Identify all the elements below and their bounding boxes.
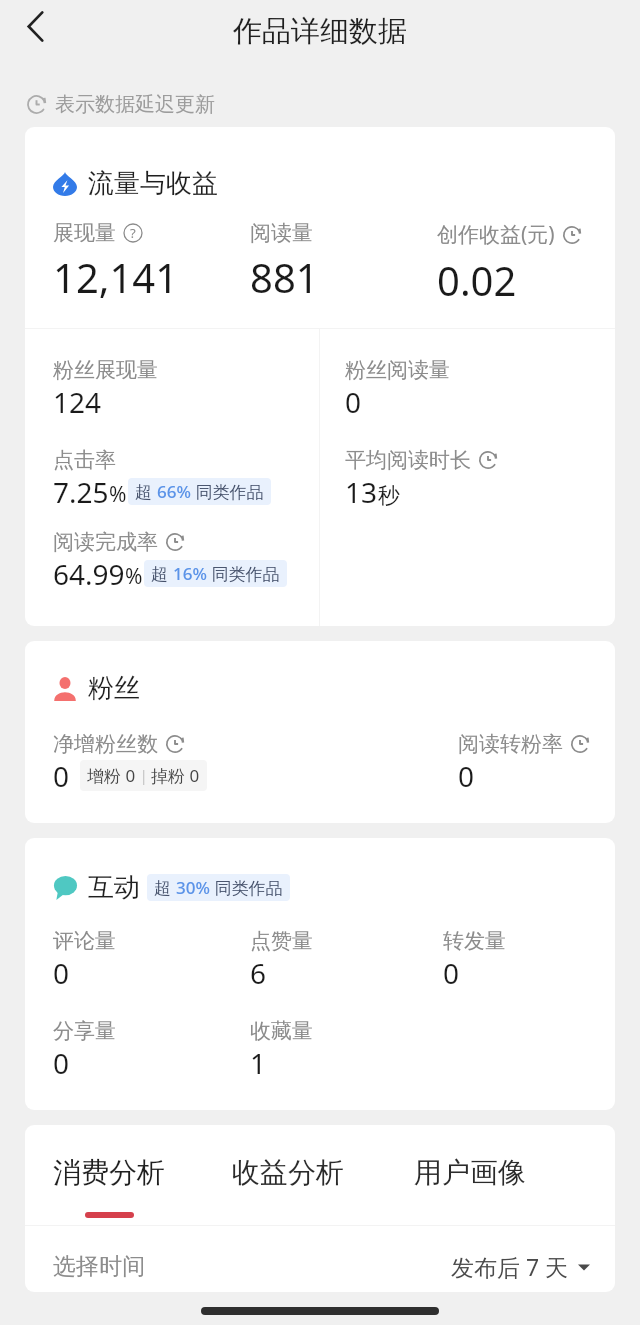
staticText: 7.25 xyxy=(53,473,109,511)
staticText: | xyxy=(136,766,151,785)
staticText: 超 xyxy=(154,876,176,899)
staticText: 流量与收益 xyxy=(88,167,218,200)
button[interactable]: 发布后 7 天 xyxy=(451,1251,590,1282)
staticText: 点赞量 xyxy=(250,928,313,954)
staticText: 消费分析 xyxy=(53,1155,165,1190)
button[interactable]: 用户画像 xyxy=(414,1155,526,1190)
staticText: 64.99 xyxy=(53,555,125,593)
staticText: 平均阅读时长 xyxy=(345,447,471,473)
staticText: 用户画像 xyxy=(414,1155,526,1190)
staticText: 881 xyxy=(250,250,319,304)
staticText: 转发量 xyxy=(443,928,506,954)
staticText: 0 xyxy=(345,383,362,421)
staticText: 表示数据延迟更新 xyxy=(55,92,215,117)
staticText: 阅读转粉率 xyxy=(458,731,563,757)
staticText: 超 xyxy=(151,562,173,585)
button[interactable]: 消费分析 xyxy=(53,1155,165,1190)
staticText: 展现量 xyxy=(53,220,116,246)
staticText: 0.02 xyxy=(437,253,517,307)
staticText: 评论量 xyxy=(53,928,116,954)
staticText: 12,141 xyxy=(53,250,179,304)
staticText: 互动 xyxy=(88,871,140,904)
staticText: 增粉 0 xyxy=(87,764,136,787)
staticText: 30% xyxy=(176,876,210,899)
staticText: 阅读量 xyxy=(250,220,313,246)
staticText: ? xyxy=(130,224,136,242)
staticText: 净增粉丝数 xyxy=(53,731,158,757)
staticText: % xyxy=(125,562,143,591)
staticText: 阅读完成率 xyxy=(53,529,158,555)
button[interactable]: Back xyxy=(7,0,63,54)
staticText: 粉丝展现量 xyxy=(53,357,158,383)
staticText: 粉丝阅读量 xyxy=(345,357,450,383)
staticText: 66% xyxy=(157,480,191,503)
staticText: 124 xyxy=(53,383,102,421)
staticText: 16% xyxy=(173,562,207,585)
staticText: 同类作品 xyxy=(210,876,283,899)
button[interactable]: 收益分析 xyxy=(232,1155,344,1190)
staticText: 秒 xyxy=(378,482,400,510)
staticText: 选择时间 xyxy=(53,1252,145,1281)
staticText: 收藏量 xyxy=(250,1018,313,1044)
staticText: 1 xyxy=(250,1044,267,1082)
staticText: 6 xyxy=(250,954,267,992)
staticText: 0 xyxy=(458,757,475,795)
staticText: 同类作品 xyxy=(191,480,264,503)
staticText: % xyxy=(109,480,127,509)
staticText: 作品详细数据 xyxy=(233,13,407,50)
staticText: 点击率 xyxy=(53,447,116,473)
staticText: 掉粉 0 xyxy=(151,764,200,787)
staticText: 粉丝 xyxy=(88,672,140,705)
staticText: 0 xyxy=(53,1044,70,1082)
staticText: 发布后 7 天 xyxy=(451,1251,569,1282)
staticText: 0 xyxy=(53,757,70,795)
staticText: 0 xyxy=(443,954,460,992)
staticText: 创作收益(元) xyxy=(437,220,555,249)
staticText: 13 xyxy=(345,473,378,511)
staticText: 收益分析 xyxy=(232,1155,344,1190)
staticText: 0 xyxy=(53,954,70,992)
staticText: 超 xyxy=(135,480,157,503)
staticText: 分享量 xyxy=(53,1018,116,1044)
staticText: 同类作品 xyxy=(207,562,280,585)
